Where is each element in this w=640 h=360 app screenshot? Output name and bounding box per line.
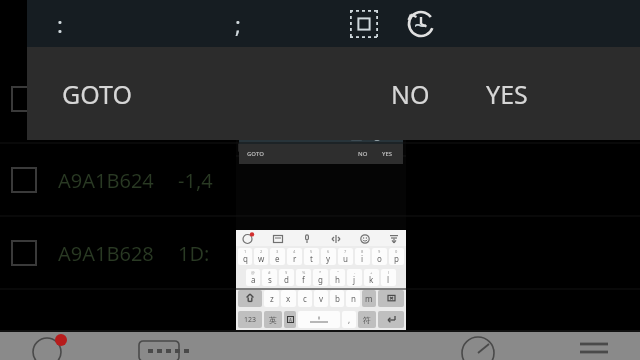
button[interactable]: Home [314, 331, 327, 344]
button[interactable]: Voice input [300, 232, 313, 245]
button[interactable]: " [330, 269, 345, 286]
staticText: g [318, 274, 323, 285]
button[interactable]: 8 [355, 248, 370, 265]
button[interactable]: x [281, 290, 296, 307]
button[interactable]: A9A1B614 [236, 43, 406, 61]
button[interactable]: NO [358, 150, 368, 158]
button[interactable]: 3 [270, 248, 285, 265]
button[interactable]: 9 [372, 248, 387, 265]
button[interactable]: A9A1B620 [0, 55, 640, 143]
button[interactable]: + [364, 269, 379, 286]
button[interactable]: 6 [321, 248, 336, 265]
button[interactable]: 7 [338, 248, 353, 265]
button[interactable]: : [57, 9, 63, 39]
button[interactable]: Save [352, 29, 365, 42]
button[interactable]: 4 [287, 248, 302, 265]
button[interactable]: YES [486, 77, 528, 111]
button[interactable]: , [342, 311, 356, 328]
button[interactable]: normal [279, 98, 397, 109]
button[interactable]: n [346, 290, 360, 307]
button[interactable]: Recents [360, 331, 373, 344]
button[interactable]: ¥ [279, 269, 294, 286]
button[interactable]: z [264, 290, 279, 307]
button[interactable]: Backspace [378, 290, 404, 307]
button[interactable]: Sogou [242, 232, 254, 244]
button[interactable]: * [313, 269, 328, 286]
button[interactable]: ( [381, 269, 396, 286]
button[interactable]: @ [246, 269, 260, 286]
button[interactable]: Hide keyboard [387, 232, 400, 245]
button[interactable]: Add to value, do not replace [245, 86, 403, 93]
button[interactable]: b [330, 290, 344, 307]
button[interactable]: 英 [264, 311, 282, 328]
button[interactable]: ~ [288, 130, 300, 142]
button[interactable]: Screenshot [138, 340, 180, 360]
button[interactable]: NO [391, 77, 430, 111]
button[interactable]: v [314, 290, 328, 307]
staticText: r [293, 253, 297, 264]
button[interactable]: A9A1B628 [236, 138, 406, 156]
button[interactable]: GOTO [62, 77, 132, 111]
button[interactable]: Emoji [358, 232, 371, 245]
button[interactable]: GOTO [247, 150, 264, 158]
button[interactable]: Select all [351, 130, 362, 141]
button[interactable]: 5 [304, 248, 319, 265]
staticText: ¥ [285, 270, 288, 275]
button[interactable]: No filter [236, 18, 406, 27]
button[interactable]: % [296, 269, 311, 286]
button[interactable]: Space [298, 311, 340, 328]
button[interactable]: Right [330, 130, 342, 142]
button[interactable]: # [262, 269, 277, 286]
button[interactable]: History [403, 6, 439, 42]
button[interactable]: History [371, 130, 383, 142]
button[interactable]: A9A1B624 [0, 144, 640, 216]
button[interactable]: c [298, 290, 312, 307]
button[interactable]: : [245, 130, 257, 142]
button[interactable]: Close [409, 7, 420, 18]
button[interactable]: Select all [347, 7, 381, 41]
button[interactable]: - [347, 269, 362, 286]
button[interactable]: Back [268, 331, 281, 344]
button[interactable]: Menu [576, 340, 612, 356]
button[interactable]: Clipboard [271, 232, 284, 245]
button[interactable]: Left [309, 130, 321, 142]
button[interactable]: m [362, 290, 376, 307]
button[interactable]: Enter [378, 311, 404, 328]
button[interactable]: ; [267, 130, 279, 142]
button[interactable]: A9A1B620 [236, 100, 406, 118]
button[interactable]: ; [235, 9, 241, 39]
button[interactable]: 2 [254, 248, 268, 265]
button[interactable]: List [370, 7, 381, 18]
button[interactable]: 123 [238, 311, 262, 328]
button[interactable]: Shift [238, 290, 262, 307]
button[interactable]: 符 [358, 311, 376, 328]
staticText: NO [358, 150, 368, 158]
button[interactable]: A9A1B628 [0, 217, 640, 289]
button[interactable]: Move cursor [329, 232, 342, 245]
staticText: f [302, 274, 305, 285]
button[interactable]: YES [382, 150, 393, 158]
button[interactable]: A9A1B61C [236, 81, 406, 99]
button[interactable]: 0 [389, 248, 404, 265]
button[interactable]: ~ [414, 9, 427, 39]
button[interactable]: Speed [458, 336, 498, 360]
button[interactable]: 1 [238, 248, 252, 265]
button[interactable]: A [284, 311, 296, 328]
button[interactable]: Edit [371, 29, 384, 42]
